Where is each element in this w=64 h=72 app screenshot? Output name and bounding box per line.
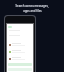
staticText: Search across messages, [15,4,49,8]
button[interactable] [7,55,33,62]
button[interactable] [7,26,33,28]
staticText: apps and files [23,9,42,13]
button[interactable] [7,41,33,48]
button[interactable] [7,48,33,55]
